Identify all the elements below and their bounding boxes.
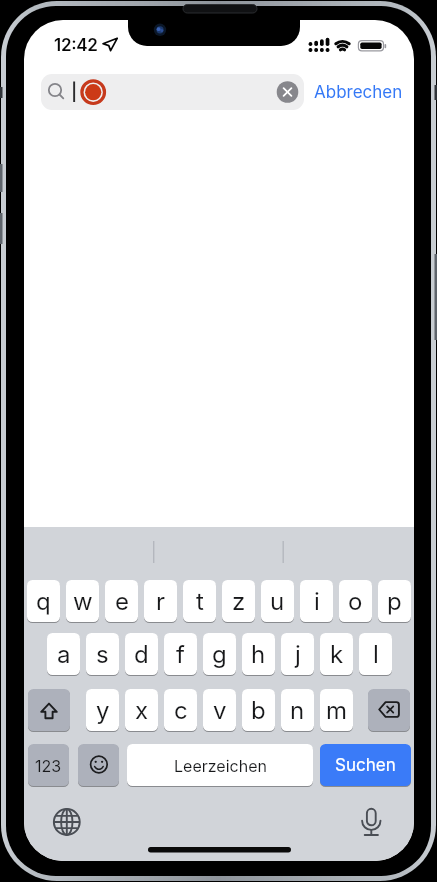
button[interactable] [78,744,119,786]
button[interactable]: i [300,580,333,622]
button[interactable]: d [125,633,158,675]
button[interactable]: w [66,580,99,622]
button[interactable]: x [125,689,158,731]
button[interactable]: m [320,689,353,731]
button[interactable] [53,808,81,836]
button[interactable]: g [203,633,236,675]
staticText: e [115,587,129,616]
button[interactable]: Leerzeichen [127,744,313,786]
button[interactable]: j [281,633,314,675]
button[interactable]: s [86,633,119,675]
button[interactable]: k [320,633,353,675]
staticText: g [212,640,227,669]
staticText: j [295,640,301,669]
staticText: o [348,587,363,616]
staticText: p [387,587,402,616]
button[interactable]: p [378,580,411,622]
staticText: d [134,640,149,669]
staticText: l [373,640,379,669]
staticText: z [232,587,246,616]
staticText: h [251,640,266,669]
button[interactable]: v [203,689,236,731]
staticText: s [96,640,109,669]
button[interactable] [28,689,70,731]
button[interactable]: e [105,580,138,622]
button[interactable]: z [222,580,255,622]
staticText: x [135,696,149,725]
staticText: v [213,696,227,725]
button[interactable] [41,74,304,110]
staticText: n [290,696,305,725]
staticText: i [314,587,320,616]
button[interactable]: l [359,633,392,675]
button[interactable]: 123 [28,744,69,786]
staticText: 12:42 [54,35,98,56]
staticText: f [176,640,185,669]
staticText: w [73,587,93,616]
button[interactable]: c [164,689,197,731]
staticText: k [330,640,344,669]
staticText: q [36,587,51,616]
staticText: Leerzeichen [174,756,267,775]
staticText: b [251,696,266,725]
button[interactable]: a [47,633,80,675]
staticText: a [57,640,71,669]
button[interactable]: Suchen [320,744,411,786]
button[interactable] [368,689,410,731]
button[interactable]: n [281,689,314,731]
button[interactable]: h [242,633,275,675]
button[interactable]: Abbrechen [312,80,404,104]
button[interactable]: r [144,580,177,622]
button[interactable]: q [27,580,60,622]
button[interactable]: t [183,580,216,622]
button[interactable]: b [242,689,275,731]
staticText: Suchen [335,755,396,776]
button[interactable] [357,806,386,837]
staticText: r [156,587,166,616]
button[interactable]: f [164,633,197,675]
staticText: t [196,587,204,616]
button[interactable]: y [86,689,119,731]
staticText: Abbrechen [314,82,403,103]
staticText: m [326,696,348,725]
staticText: y [96,696,110,725]
button[interactable]: u [261,580,294,622]
staticText: u [270,587,285,616]
staticText: 123 [35,756,62,775]
button[interactable]: o [339,580,372,622]
staticText: c [174,696,188,725]
button[interactable] [276,81,299,104]
